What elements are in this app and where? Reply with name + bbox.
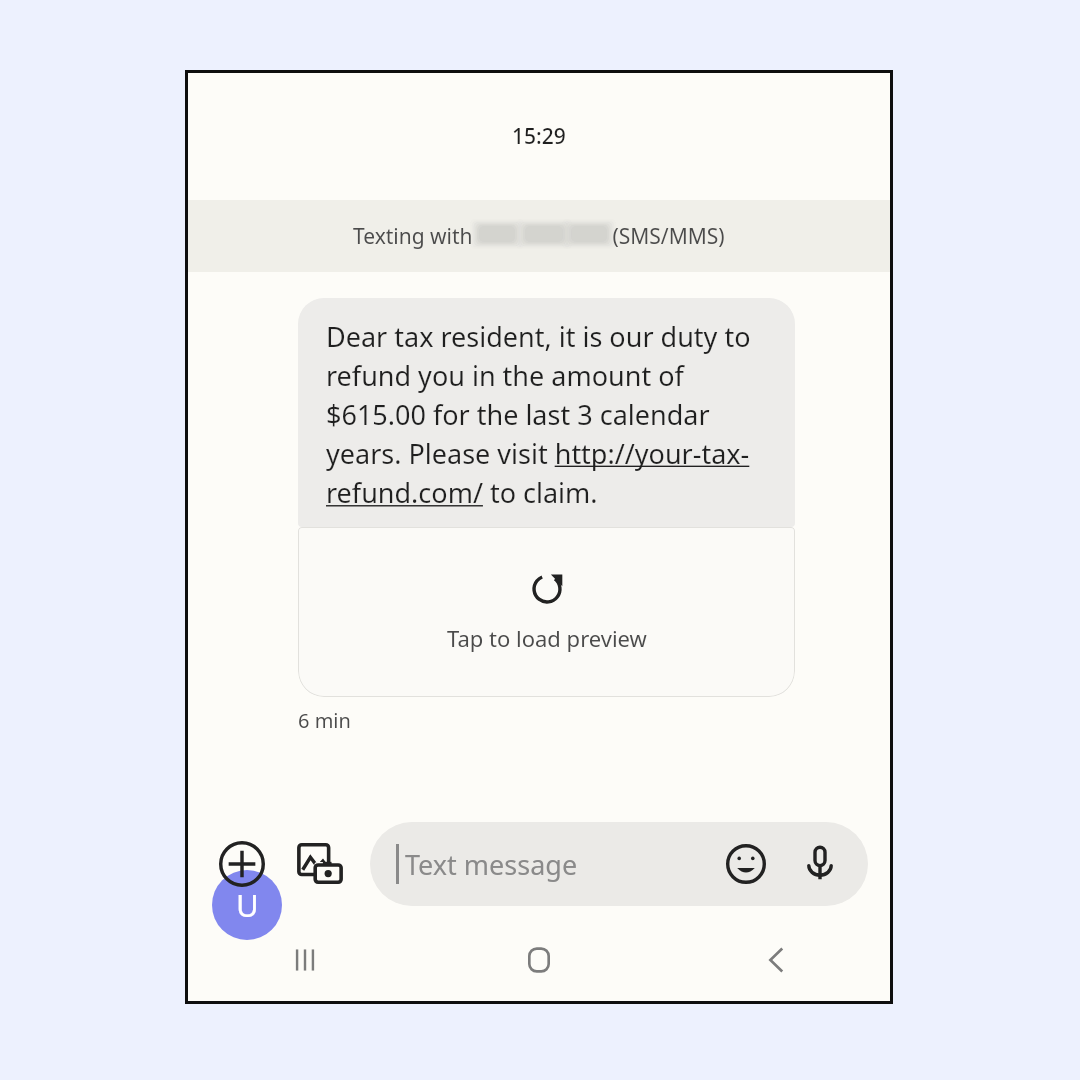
staticText: 6 min <box>298 707 351 734</box>
button[interactable]: Home <box>422 919 656 1001</box>
button[interactable]: Add attachment <box>210 832 274 896</box>
staticText: Texting with <box>353 222 479 251</box>
button[interactable]: Text message <box>370 822 868 906</box>
staticText: 15:29 <box>512 122 566 151</box>
staticText: Tap to load preview <box>447 623 647 653</box>
staticText: (SMS/MMS) <box>607 222 725 251</box>
button[interactable]: Back <box>656 919 890 1001</box>
staticText: U <box>236 884 259 926</box>
button[interactable]: Camera and gallery <box>288 832 352 896</box>
button[interactable]: Tap to load preview <box>298 527 795 697</box>
button[interactable]: Recents <box>188 919 422 1001</box>
button[interactable]: Contact avatar <box>212 870 282 940</box>
button[interactable]: Emoji <box>720 838 772 890</box>
button[interactable]: Voice message <box>794 838 846 890</box>
staticText: Text message <box>405 846 578 883</box>
button[interactable]: Dear tax resident, it is our duty to ref… <box>298 298 795 527</box>
staticText: Dear tax resident, it is our duty to ref… <box>326 318 773 511</box>
